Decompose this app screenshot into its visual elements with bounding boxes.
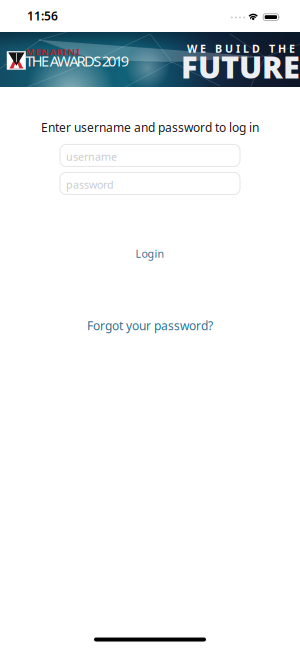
staticText: D	[84, 51, 95, 70]
staticText: W	[57, 51, 71, 70]
staticText: 2	[102, 51, 110, 70]
staticText	[47, 51, 51, 70]
staticText: A	[50, 45, 56, 58]
staticText: R	[77, 51, 86, 70]
button[interactable]: Forgot your password?	[77, 314, 223, 337]
staticText: M	[26, 45, 35, 58]
staticText: L	[243, 41, 249, 56]
staticText: username	[66, 150, 117, 164]
staticText: D	[252, 41, 260, 56]
staticText: N	[41, 45, 49, 58]
staticText: password	[66, 178, 114, 192]
staticText: Login	[135, 246, 164, 261]
staticText: I	[63, 45, 67, 58]
staticText: N	[67, 45, 75, 58]
staticText: E	[200, 41, 206, 56]
staticText: 0	[108, 51, 116, 70]
staticText: T	[25, 51, 33, 70]
staticText: E	[35, 45, 40, 58]
staticText: 9	[121, 51, 129, 70]
staticText: R	[56, 45, 62, 58]
staticText: S	[93, 51, 101, 70]
staticText	[99, 51, 103, 70]
staticText: I	[76, 45, 80, 58]
staticText: Forgot your password?	[87, 318, 213, 333]
staticText: 11:56	[27, 8, 58, 24]
staticText: U	[225, 41, 233, 56]
staticText	[209, 41, 212, 56]
staticText: I	[236, 41, 240, 56]
staticText: E	[41, 51, 49, 70]
staticText: H	[32, 51, 43, 70]
staticText: Enter username and password to log in	[41, 119, 259, 135]
staticText	[263, 41, 266, 56]
staticText: B	[215, 41, 222, 56]
textField[interactable]: username	[66, 148, 234, 163]
staticText: T	[269, 41, 275, 56]
staticText: A	[69, 51, 78, 70]
secureTextField[interactable]: password	[66, 176, 234, 191]
staticText: username	[66, 148, 117, 163]
staticText: E	[289, 41, 295, 56]
staticText: A	[50, 51, 59, 70]
staticText: password	[66, 176, 114, 191]
staticText: 1	[114, 51, 122, 70]
staticText: FUTURE	[181, 46, 300, 87]
staticText: H	[278, 41, 286, 56]
staticText: W	[187, 41, 197, 56]
button[interactable]: Login	[123, 242, 176, 265]
